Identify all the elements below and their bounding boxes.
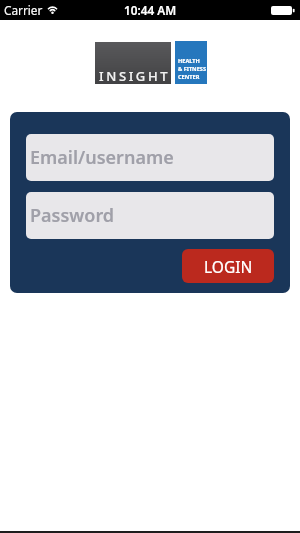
staticText: CENTER <box>178 73 200 81</box>
staticText: HEALTH <box>178 57 200 65</box>
staticText: INSIGHT <box>99 67 171 85</box>
staticText: Password <box>30 203 115 228</box>
staticText: 10:44 AM <box>124 2 177 18</box>
staticText: Email/username <box>30 145 174 170</box>
button[interactable]: Password <box>26 192 274 239</box>
staticText: LOGIN <box>204 256 253 277</box>
button[interactable]: Email/username <box>26 134 274 181</box>
staticText: Carrier <box>4 2 43 18</box>
button[interactable]: LOGIN <box>182 249 274 283</box>
staticText: & FITNESS <box>178 65 206 73</box>
